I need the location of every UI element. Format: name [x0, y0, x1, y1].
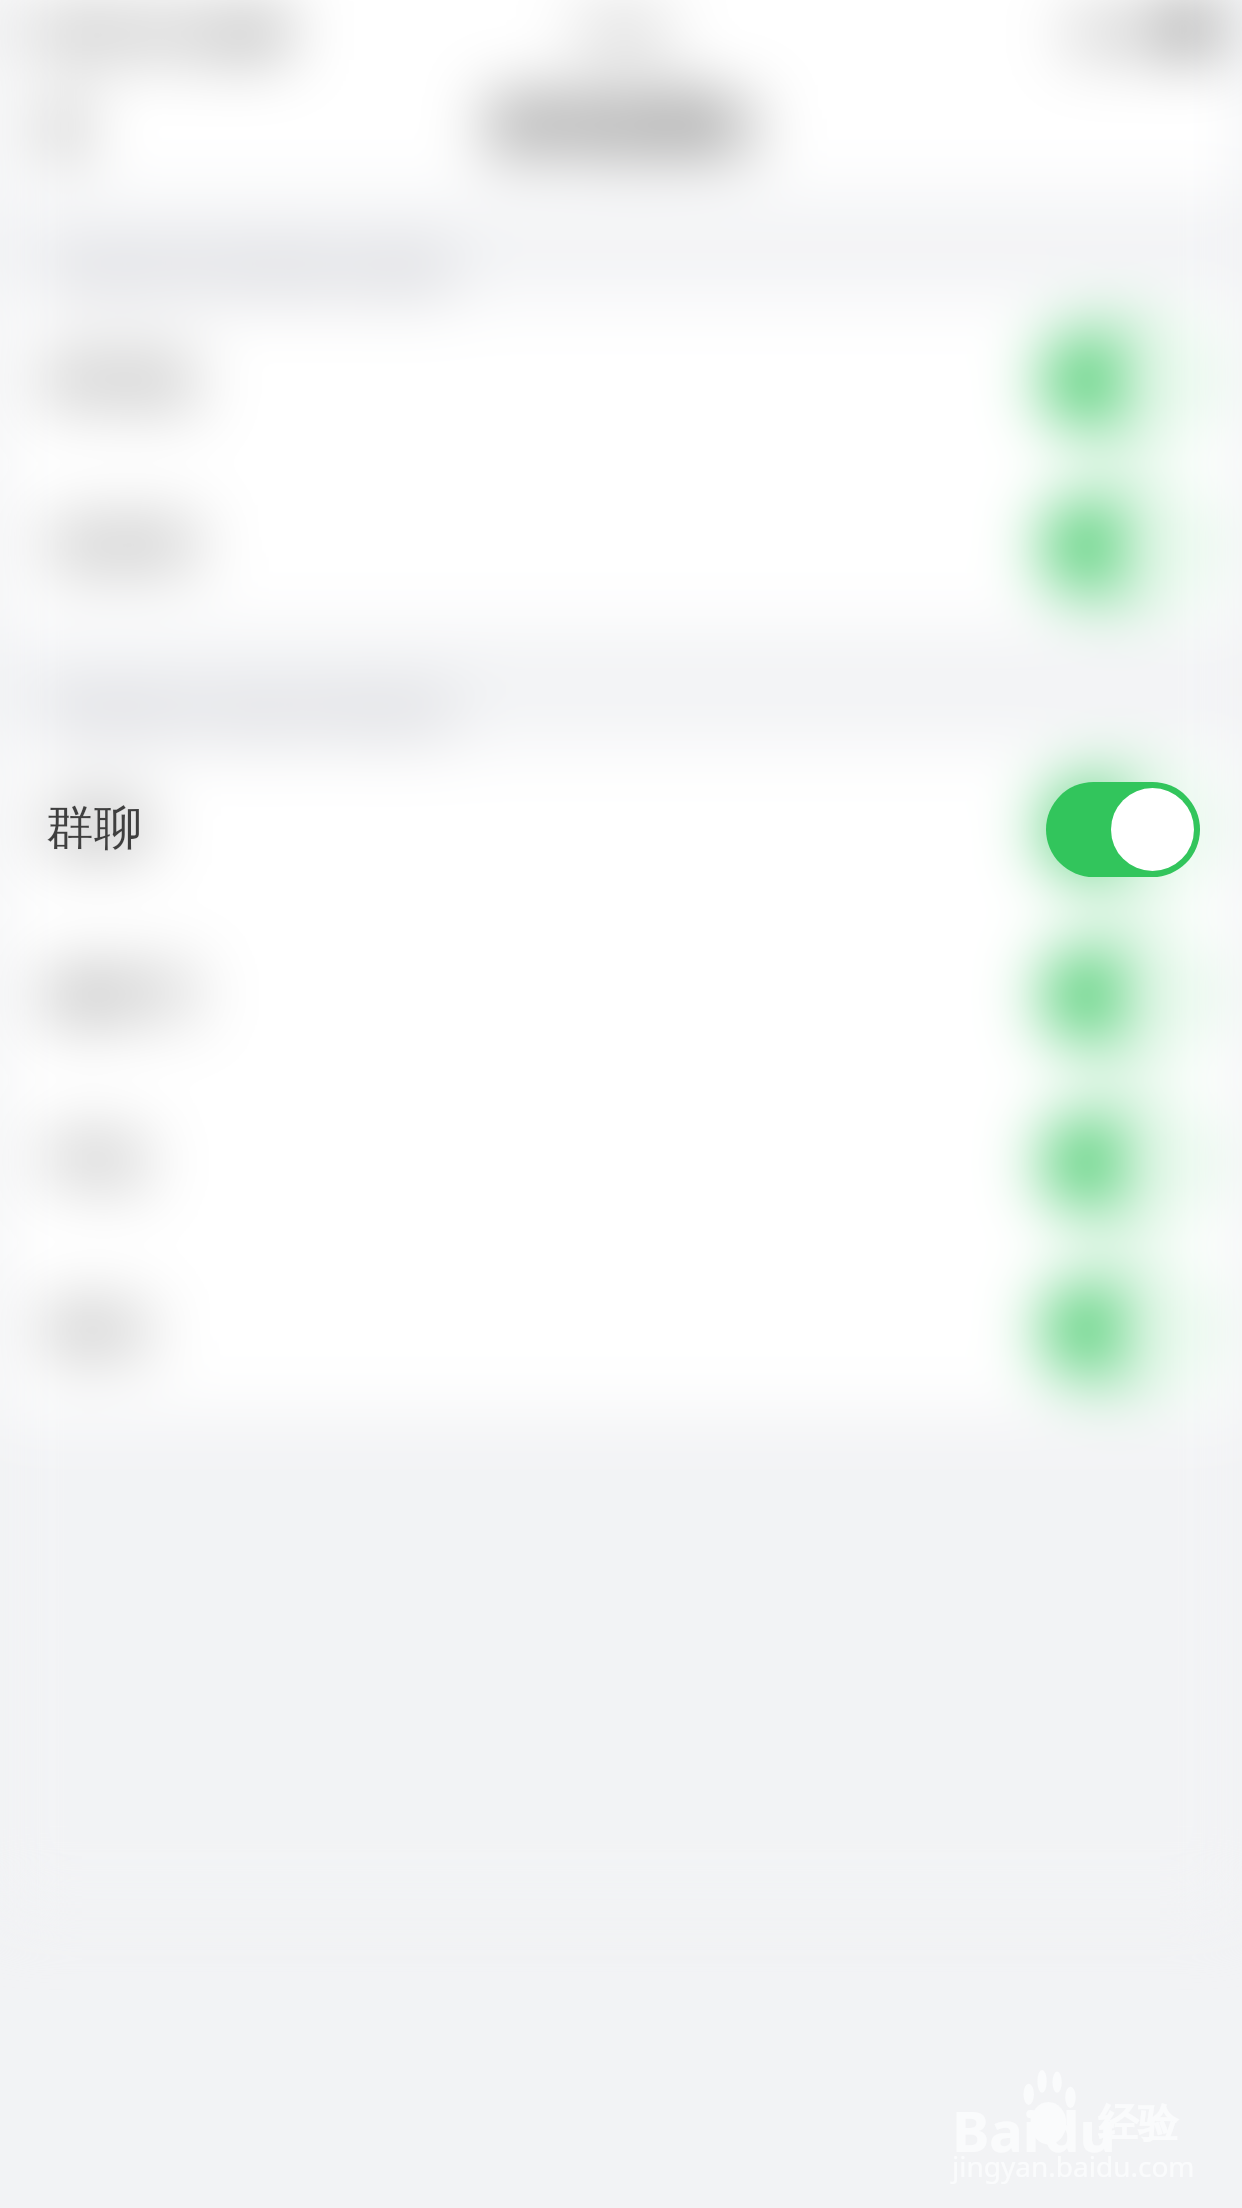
button[interactable]: 语音和 [0, 463, 1242, 629]
button[interactable]: Switch on [1046, 333, 1200, 428]
button[interactable]: Switch on [1046, 1115, 1200, 1210]
staticText: 群聊 [46, 798, 142, 858]
staticText: 经验 [1098, 2098, 1178, 2148]
staticText: 服务号 [47, 964, 197, 1027]
button[interactable]: Back [18, 82, 114, 176]
button[interactable]: Switch on [1046, 948, 1200, 1043]
button[interactable]: Switch on [1046, 782, 1200, 877]
staticText: 10:42 [574, 8, 667, 57]
button[interactable]: Switch on [1046, 1282, 1200, 1377]
staticText: jingyan.baidu.com [952, 2147, 1195, 2185]
staticText: 新消息 [47, 349, 197, 412]
button[interactable]: 群聊 [0, 745, 1242, 912]
staticText: 新消息通知 [491, 94, 751, 160]
button[interactable]: 服务号 [0, 912, 1242, 1079]
staticText: du [1044, 2092, 1116, 2168]
staticText: 86% [1072, 6, 1148, 58]
button[interactable]: 群聊 [0, 745, 1242, 912]
staticText: 声音 [47, 1131, 147, 1194]
staticText: 群聊 [47, 797, 147, 860]
button[interactable]: Switch on [1046, 781, 1200, 876]
button[interactable]: 振动 [0, 1246, 1242, 1413]
button[interactable]: Switch on [1046, 499, 1200, 594]
staticText: 振动 [47, 1298, 147, 1361]
staticText: 语音和 [47, 515, 197, 578]
staticText: 中国移动4G [14, 4, 226, 59]
button[interactable]: 新消息 [0, 298, 1242, 463]
button[interactable]: 声音 [0, 1079, 1242, 1246]
staticText: Bai [952, 2092, 1040, 2168]
